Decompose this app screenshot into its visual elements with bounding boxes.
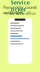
staticText: Payment for sounds and bridges [3,4,37,15]
staticText: Service ticket [10,0,29,13]
staticText: is due to the office [4,11,35,16]
